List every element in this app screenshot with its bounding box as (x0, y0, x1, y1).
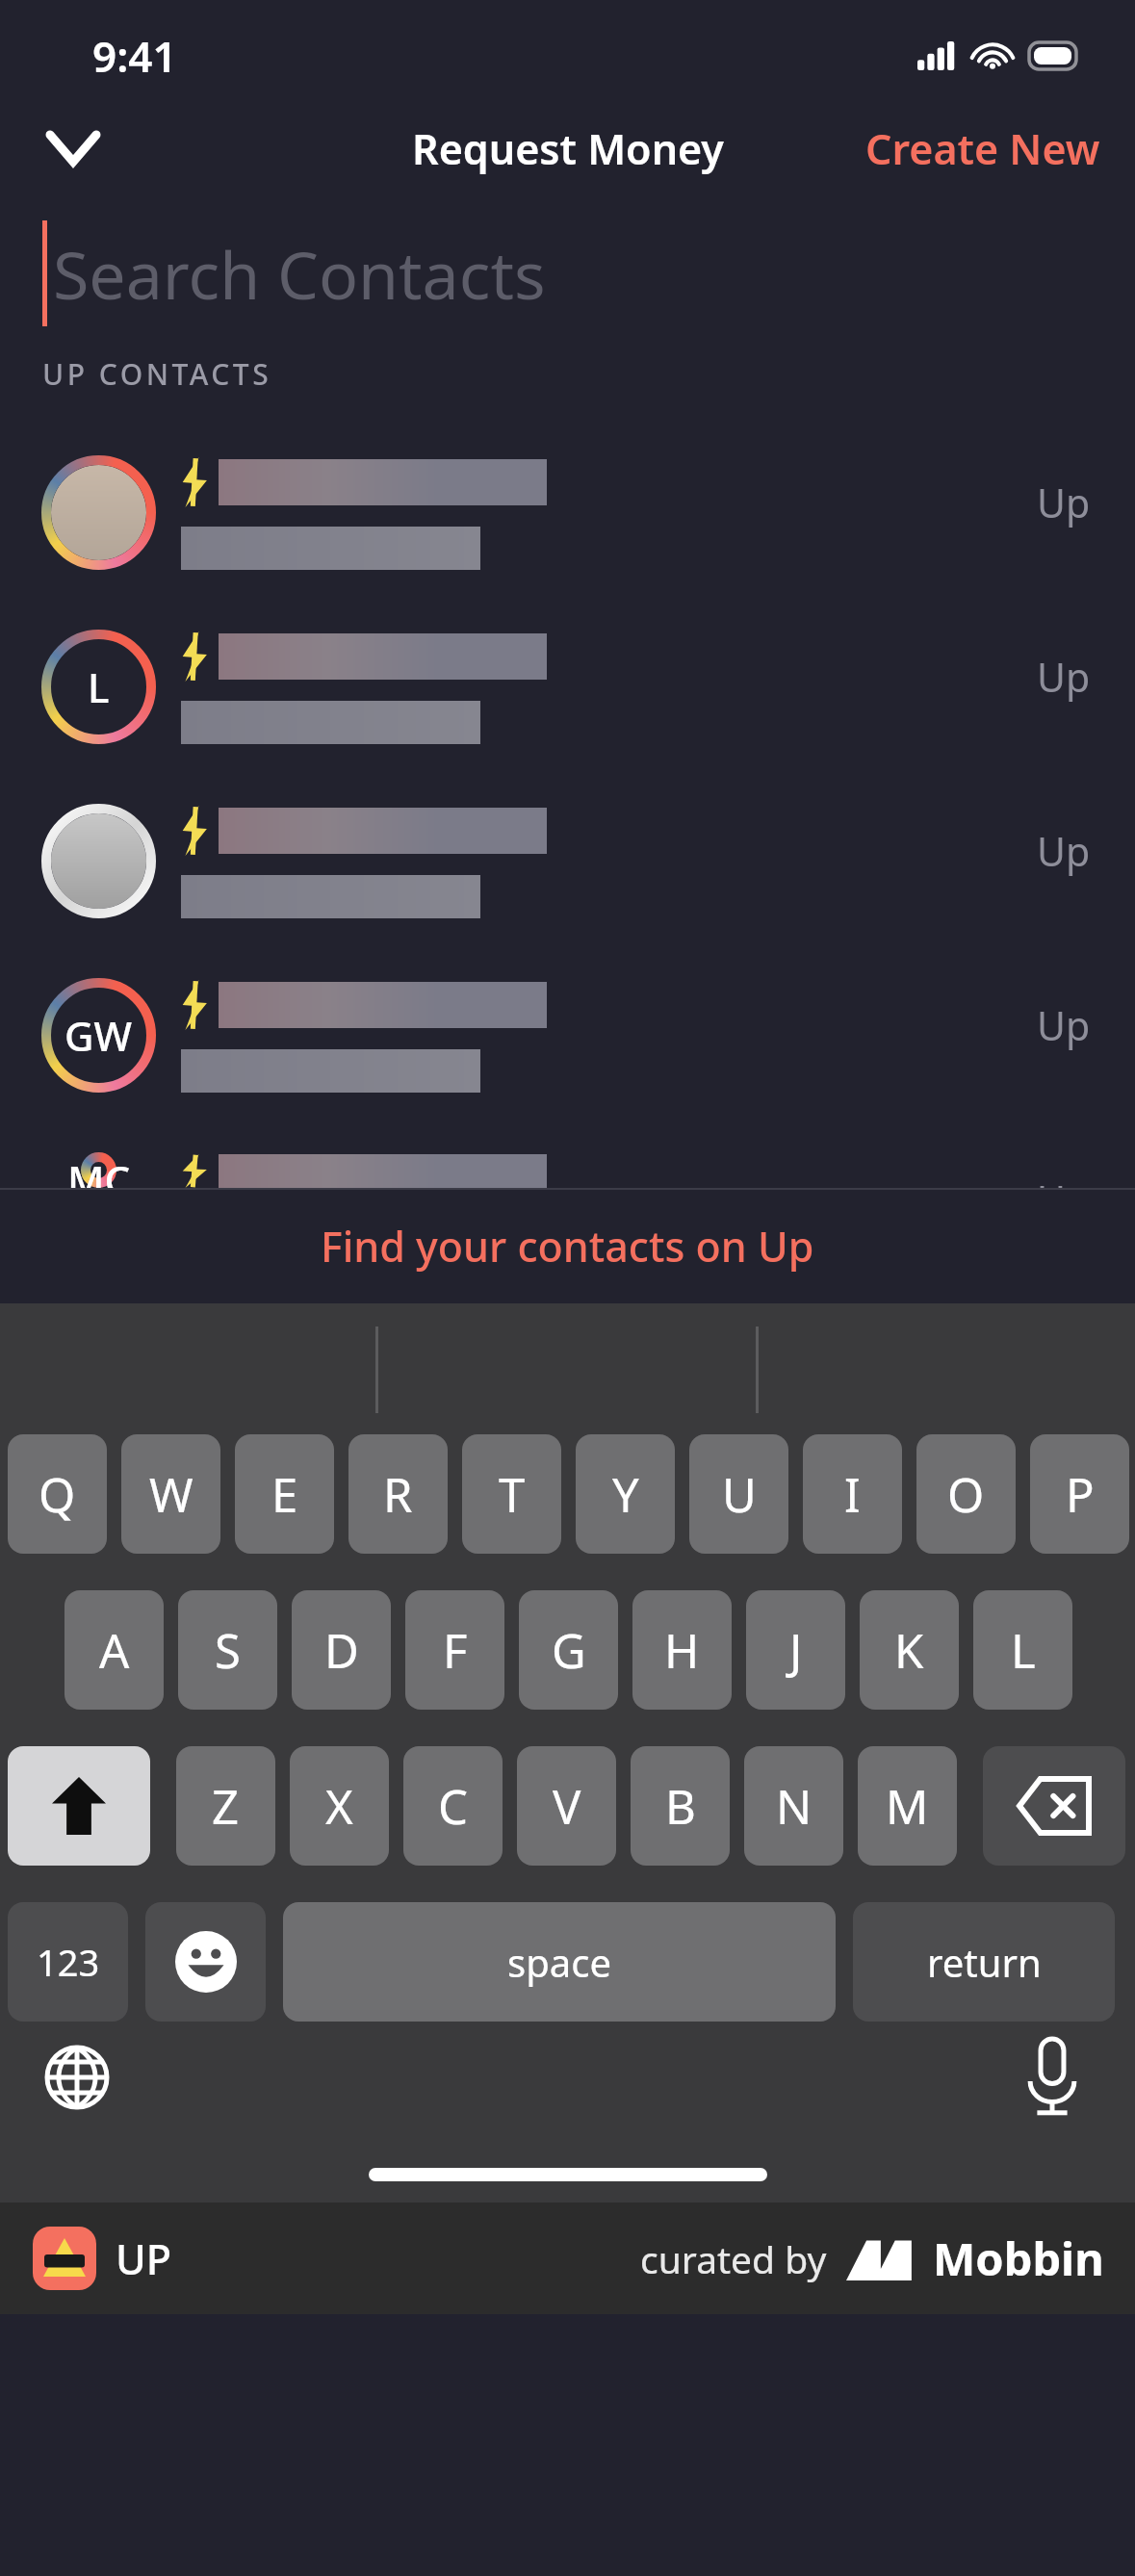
button[interactable]: K (860, 1590, 959, 1710)
staticText: K (894, 1618, 924, 1683)
button[interactable]: Shift (8, 1746, 150, 1866)
button[interactable]: Create New (852, 103, 1114, 194)
staticText: B (665, 1774, 696, 1839)
staticText: G (552, 1618, 586, 1683)
button[interactable]: D (292, 1590, 391, 1710)
staticText: Q (39, 1462, 76, 1527)
button[interactable]: G (519, 1590, 618, 1710)
staticText: UP CONTACTS (42, 354, 272, 394)
button[interactable]: A (64, 1590, 164, 1710)
staticText: R (383, 1462, 413, 1527)
staticText: T (499, 1462, 526, 1527)
staticText: Search Contacts (53, 229, 546, 319)
button[interactable]: V (517, 1746, 616, 1866)
button[interactable]: L (0, 597, 1135, 771)
staticText: A (99, 1618, 130, 1683)
staticText: N (776, 1774, 813, 1839)
staticText: space (507, 1936, 611, 1988)
staticText: E (271, 1462, 298, 1527)
button[interactable]: S (178, 1590, 277, 1710)
staticText: 123 (37, 1937, 100, 1987)
staticText: Z (212, 1774, 240, 1839)
button[interactable]: T (462, 1434, 561, 1554)
button[interactable]: MC (0, 1120, 1135, 1188)
button[interactable]: C (403, 1746, 503, 1866)
button[interactable]: F (405, 1590, 504, 1710)
button[interactable]: Collapse (29, 104, 117, 193)
staticText: H (664, 1618, 700, 1683)
button[interactable]: Change keyboard (31, 2031, 123, 2124)
staticText: P (1066, 1462, 1095, 1527)
button[interactable]: Dictate (1006, 2031, 1098, 2124)
button[interactable]: Q (8, 1434, 107, 1554)
staticText: L (88, 659, 110, 714)
button[interactable]: space (283, 1902, 836, 2022)
button[interactable]: L (973, 1590, 1072, 1710)
staticText: curated by (640, 2233, 827, 2284)
button[interactable]: B (631, 1746, 730, 1866)
button[interactable]: U (689, 1434, 788, 1554)
button[interactable]: J (746, 1590, 845, 1710)
button[interactable]: Y (576, 1434, 675, 1554)
button[interactable]: H (632, 1590, 732, 1710)
button[interactable]: M (858, 1746, 957, 1866)
button[interactable]: Up (0, 423, 1135, 597)
staticText: D (324, 1618, 359, 1683)
button[interactable]: Z (176, 1746, 275, 1866)
staticText: V (553, 1774, 581, 1839)
button[interactable]: Up (0, 771, 1135, 945)
staticText: F (443, 1618, 468, 1683)
staticText: L (1011, 1618, 1036, 1683)
button[interactable]: Search Contacts (0, 200, 1135, 347)
staticText: W (149, 1462, 193, 1527)
staticText: Create New (865, 120, 1100, 177)
staticText: 9:41 (92, 27, 177, 85)
staticText: Y (612, 1462, 639, 1527)
staticText: U (722, 1462, 757, 1527)
button[interactable]: O (916, 1434, 1016, 1554)
button[interactable]: I (803, 1434, 902, 1554)
staticText: Mobbin (933, 2228, 1104, 2289)
staticText: Up (1037, 650, 1091, 704)
button[interactable]: E (235, 1434, 334, 1554)
staticText: X (325, 1774, 353, 1839)
button[interactable]: Find your contacts on Up (0, 1188, 1135, 1303)
staticText: I (844, 1462, 861, 1527)
button[interactable]: W (121, 1434, 220, 1554)
button[interactable]: P (1030, 1434, 1129, 1554)
staticText: GW (64, 1008, 133, 1063)
staticText: Find your contacts on Up (321, 1218, 814, 1275)
staticText: S (215, 1618, 241, 1683)
button[interactable]: X (290, 1746, 389, 1866)
staticText: J (789, 1618, 803, 1683)
staticText: M (886, 1774, 929, 1839)
staticText: Up (1037, 824, 1091, 878)
button[interactable]: N (744, 1746, 843, 1866)
staticText: Up (1037, 998, 1091, 1052)
button[interactable]: 123 (8, 1902, 128, 2022)
button[interactable]: Emoji (145, 1902, 266, 2022)
staticText: Up (1037, 1172, 1091, 1188)
staticText: Up (1037, 476, 1091, 529)
staticText: return (927, 1936, 1042, 1988)
button[interactable]: Backspace (983, 1746, 1125, 1866)
staticText: MC (67, 1152, 131, 1188)
button[interactable]: return (853, 1902, 1115, 2022)
staticText: UP (116, 2230, 171, 2287)
staticText: O (947, 1462, 985, 1527)
staticText: Request Money (412, 120, 724, 177)
button[interactable]: R (348, 1434, 448, 1554)
staticText: C (438, 1774, 468, 1839)
button[interactable]: GW (0, 945, 1135, 1120)
